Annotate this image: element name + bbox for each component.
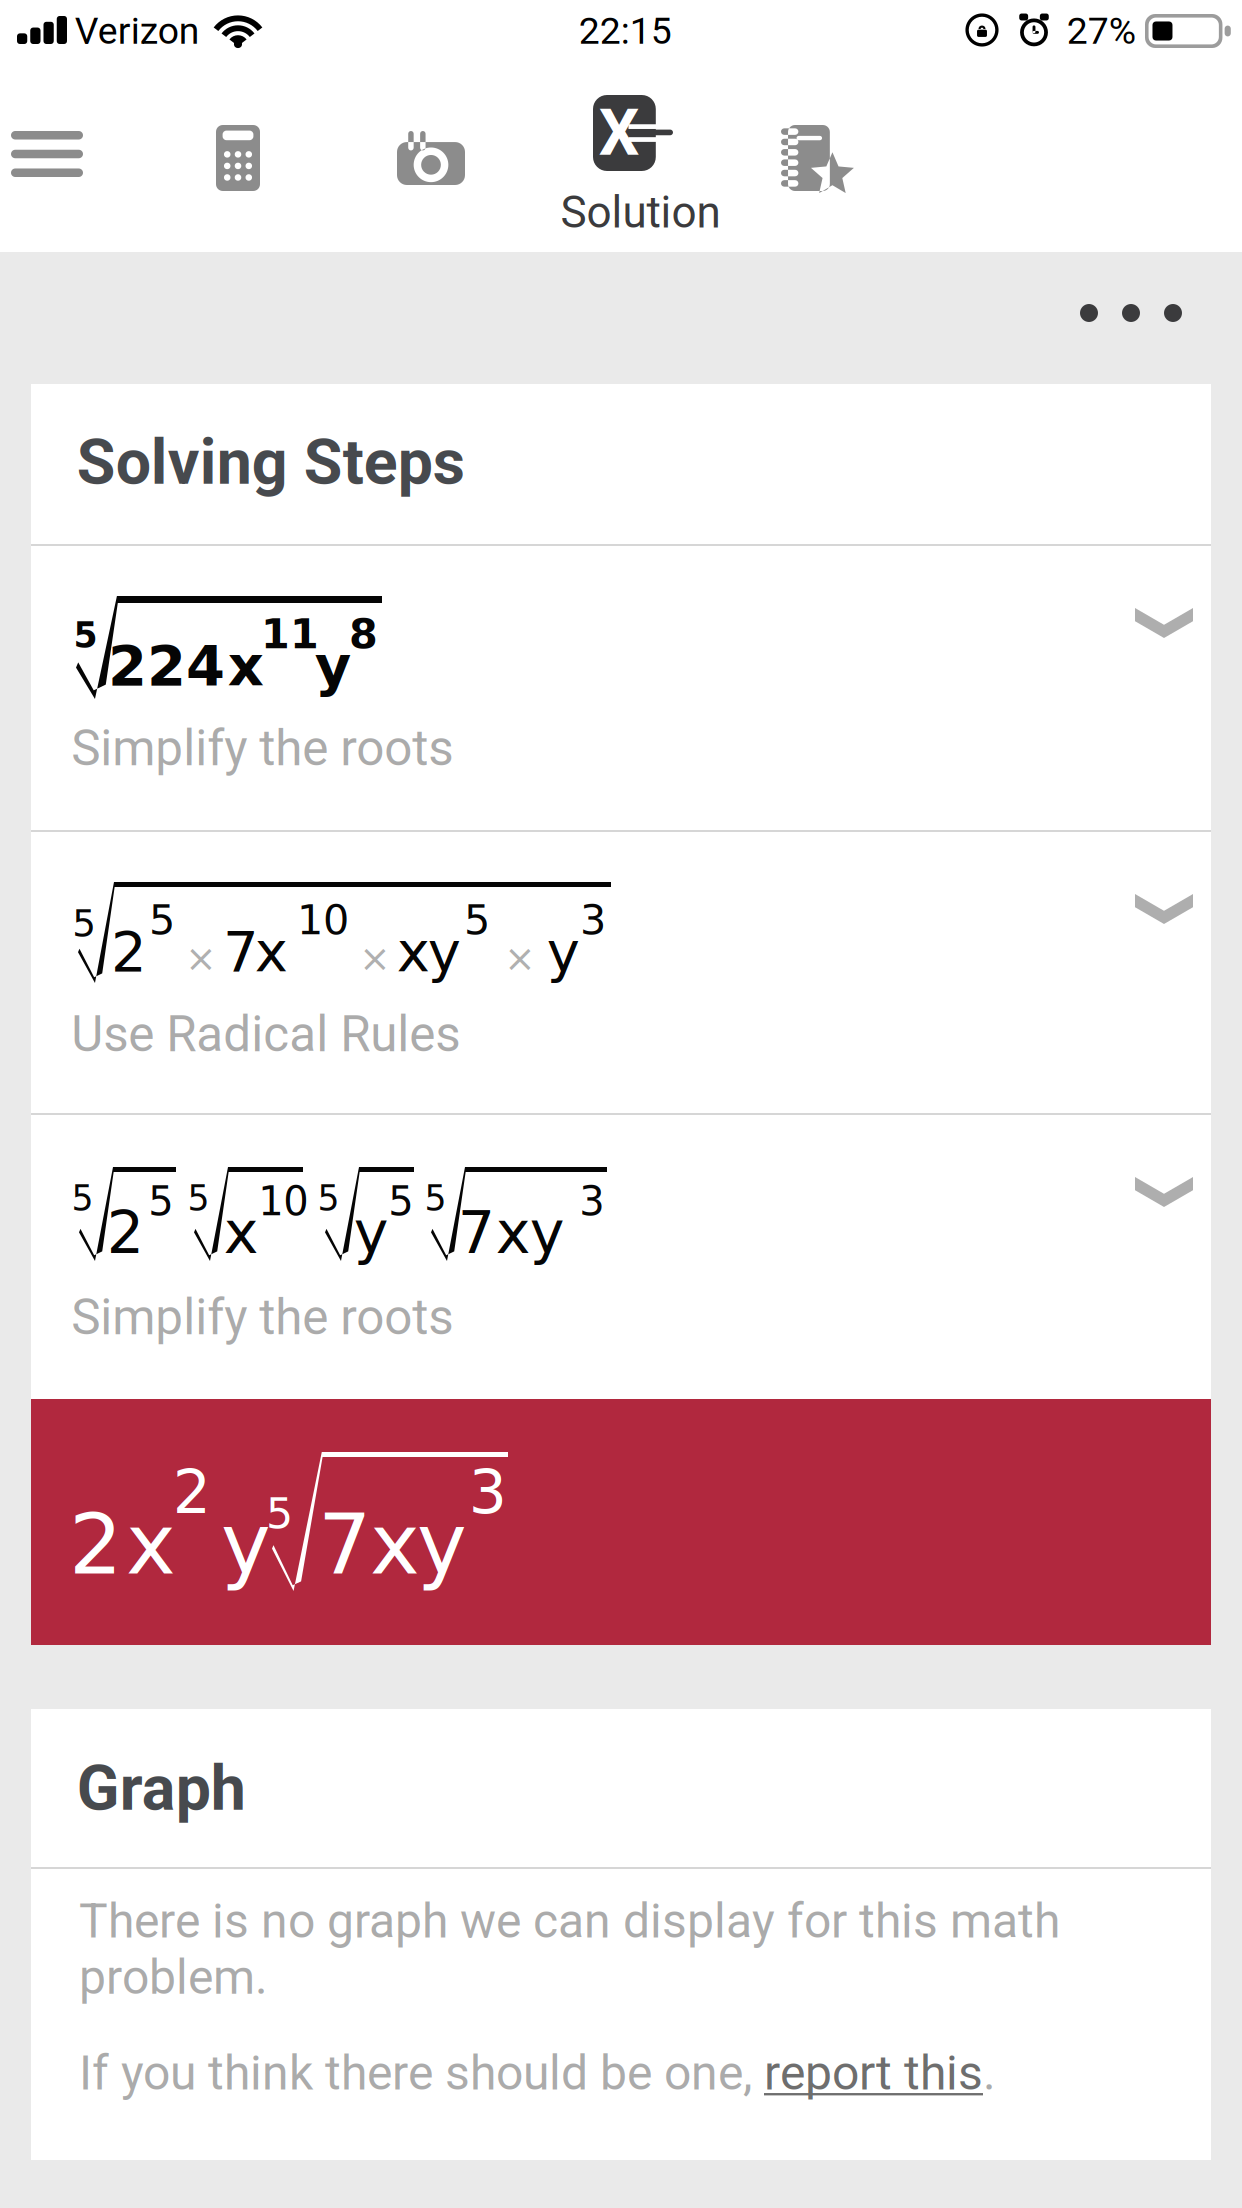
- staticText: 2: [69, 1495, 122, 1593]
- staticText: 5: [464, 896, 490, 944]
- staticText: Simplify the roots: [71, 719, 453, 777]
- staticText: x: [228, 633, 264, 698]
- button[interactable]: Notebook: [780, 62, 976, 252]
- staticText: 5: [317, 1178, 339, 1219]
- staticText: x: [255, 919, 288, 984]
- staticText: Verizon: [75, 9, 200, 53]
- staticText: 7: [458, 1198, 495, 1267]
- staticText: 5: [424, 1178, 446, 1219]
- staticText: 22:15: [579, 9, 672, 53]
- staticText: ×: [185, 937, 216, 980]
- staticText: x: [126, 1495, 176, 1593]
- staticText: 5: [266, 1489, 293, 1538]
- staticText: 3: [580, 896, 606, 944]
- staticText: There is no graph we can display for thi…: [79, 1893, 1060, 2005]
- staticText: X: [599, 95, 640, 170]
- staticText: x: [224, 1198, 259, 1267]
- staticText: 2: [107, 1198, 144, 1267]
- staticText: y: [547, 919, 580, 984]
- button[interactable]: report this: [764, 2045, 983, 2101]
- staticText: 8: [349, 610, 378, 658]
- button[interactable]: 5: [31, 832, 1211, 1113]
- staticText: y: [428, 919, 461, 984]
- button[interactable]: Menu: [0, 62, 196, 252]
- staticText: 5: [72, 902, 96, 945]
- button[interactable]: 5: [31, 546, 1211, 830]
- staticText: 11: [261, 610, 319, 658]
- button[interactable]: Calculator: [196, 62, 392, 252]
- staticText: y: [354, 1198, 389, 1267]
- staticText: 3: [579, 1178, 604, 1225]
- staticText: .: [983, 2045, 996, 2101]
- button[interactable]: Camera: [392, 62, 588, 252]
- staticText: 10: [297, 896, 349, 944]
- staticText: y: [530, 1198, 565, 1267]
- button[interactable]: 5: [31, 1115, 1211, 1399]
- staticText: 3: [469, 1457, 507, 1527]
- staticText: 7: [223, 919, 259, 984]
- button[interactable]: X: [588, 62, 784, 252]
- staticText: 224: [108, 633, 225, 698]
- staticText: 5: [187, 1178, 209, 1219]
- staticText: 5: [71, 1178, 93, 1219]
- staticText: Solving Steps: [77, 426, 465, 499]
- staticText: 5: [149, 896, 175, 944]
- staticText: y: [221, 1495, 271, 1593]
- staticText: 5: [388, 1178, 413, 1225]
- staticText: Use Radical Rules: [71, 1005, 460, 1063]
- staticText: ×: [504, 937, 535, 980]
- staticText: x: [496, 1198, 531, 1267]
- staticText: 5: [148, 1178, 173, 1225]
- staticText: Graph: [77, 1752, 246, 1825]
- button[interactable]: More options: [1050, 252, 1212, 384]
- staticText: Simplify the roots: [71, 1288, 453, 1346]
- staticText: 5: [73, 615, 97, 656]
- staticText: y: [315, 633, 352, 698]
- staticText: 7: [318, 1495, 371, 1593]
- staticText: If you think there should be one,: [79, 2045, 764, 2101]
- staticText: report this: [764, 2045, 983, 2101]
- staticText: 2: [111, 919, 147, 984]
- staticText: Solution: [560, 187, 720, 238]
- staticText: y: [417, 1495, 467, 1593]
- staticText: ×: [359, 937, 390, 980]
- staticText: x: [370, 1495, 420, 1593]
- staticText: 10: [258, 1178, 308, 1225]
- staticText: 27%: [1067, 9, 1136, 53]
- staticText: 2: [173, 1457, 211, 1527]
- staticText: x: [397, 919, 430, 984]
